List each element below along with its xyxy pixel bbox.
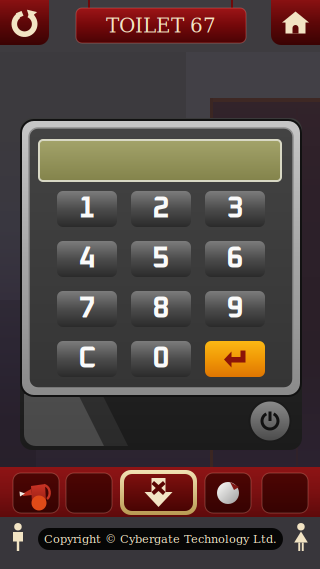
staticText: 9 bbox=[226, 294, 243, 324]
staticText: TOILET 67 bbox=[106, 14, 216, 37]
button[interactable]: 5 bbox=[131, 241, 191, 277]
staticText: 8 bbox=[152, 294, 169, 324]
button[interactable]: Empty slot bbox=[262, 473, 308, 513]
button[interactable]: Restart level bbox=[0, 0, 49, 45]
button[interactable]: Stone bbox=[205, 473, 251, 513]
button[interactable]: Home bbox=[271, 0, 320, 45]
button[interactable]: 7 bbox=[57, 291, 117, 327]
staticText: 4 bbox=[78, 244, 95, 274]
button[interactable]: 2 bbox=[131, 191, 191, 227]
button[interactable]: Drop item bbox=[120, 470, 197, 515]
button[interactable]: Watering can bbox=[13, 473, 59, 513]
button[interactable]: 9 bbox=[205, 291, 265, 327]
staticText: 2 bbox=[152, 194, 169, 224]
staticText: 5 bbox=[152, 244, 169, 274]
staticText: Copyright © Cybergate Technology Ltd. bbox=[44, 532, 277, 546]
staticText: 7 bbox=[78, 294, 95, 324]
button[interactable]: 3 bbox=[205, 191, 265, 227]
staticText: C bbox=[78, 344, 96, 374]
button[interactable]: 4 bbox=[57, 241, 117, 277]
staticText: 0 bbox=[152, 344, 169, 374]
staticText: 6 bbox=[226, 244, 243, 274]
button[interactable]: Power bbox=[248, 399, 292, 443]
button[interactable]: 1 bbox=[57, 191, 117, 227]
staticText: 3 bbox=[226, 194, 243, 224]
button[interactable]: 0 bbox=[131, 341, 191, 377]
button[interactable]: Empty slot bbox=[66, 473, 112, 513]
staticText: 1 bbox=[78, 194, 95, 224]
button[interactable]: 8 bbox=[131, 291, 191, 327]
button[interactable]: C bbox=[57, 341, 117, 377]
button[interactable]: Enter bbox=[205, 341, 265, 377]
button[interactable]: 6 bbox=[205, 241, 265, 277]
